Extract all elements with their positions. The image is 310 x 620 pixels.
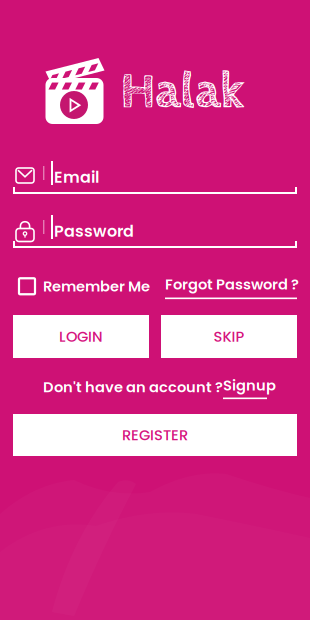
staticText: Signup [223, 375, 276, 395]
staticText: REGISTER [122, 425, 188, 445]
button[interactable]: SKIP [161, 315, 297, 358]
button[interactable]: LOGIN [13, 315, 149, 358]
staticText: Halak [120, 62, 245, 121]
staticText: Forgot Password ? [165, 274, 299, 294]
staticText: LOGIN [59, 326, 103, 347]
staticText: Don't have an account ? [43, 377, 223, 397]
staticText: Remember Me [43, 276, 150, 296]
button[interactable]: Forgot Password ? [165, 274, 299, 299]
button[interactable]: REGISTER [13, 414, 297, 456]
staticText: Password [54, 220, 134, 242]
staticText: SKIP [213, 326, 244, 347]
button[interactable]: Remember Me [19, 276, 150, 296]
button[interactable]: Signup [223, 375, 276, 399]
staticText: Email [54, 166, 99, 188]
